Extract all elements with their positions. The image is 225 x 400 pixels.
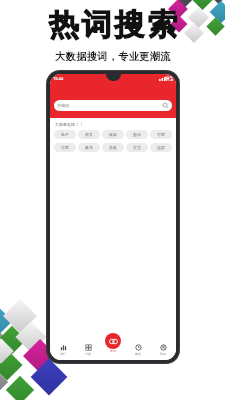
staticText: 美食: [109, 145, 117, 150]
staticText: 大家都在搜！！: [55, 122, 83, 127]
button[interactable]: 我的: [152, 343, 174, 357]
button[interactable]: 关键词: [54, 100, 172, 111]
staticText: 排行: [60, 352, 66, 356]
staticText: 我的: [160, 352, 166, 356]
staticText: 妹妹: [109, 132, 117, 137]
staticText: 热词搜索: [47, 6, 179, 44]
button[interactable]: 可爱: [54, 143, 76, 152]
staticText: 大数据搜词，专业更潮流: [55, 50, 171, 63]
button[interactable]: 温柔: [150, 143, 172, 152]
staticText: 温柔: [157, 145, 165, 150]
button[interactable]: 最近: [127, 343, 149, 357]
button[interactable]: 兔子: [54, 130, 76, 139]
button[interactable]: 文字: [126, 143, 148, 152]
staticText: 最近: [135, 352, 141, 356]
staticText: 豪车: [85, 145, 93, 150]
staticText: 关键词: [57, 103, 69, 108]
button[interactable]: 新年: [126, 130, 148, 139]
button[interactable]: 可爱: [150, 130, 172, 139]
staticText: 兔子: [61, 132, 69, 137]
button[interactable]: 搜索: [105, 333, 121, 349]
button[interactable]: 排行: [52, 343, 74, 357]
staticText: 可爱: [157, 132, 165, 137]
staticText: 搜词: [110, 349, 116, 353]
button[interactable]: 妹妹: [102, 130, 124, 139]
staticText: 分类: [85, 352, 91, 356]
staticText: 文字: [133, 145, 141, 150]
button[interactable]: 美食: [102, 143, 124, 152]
staticText: 帅女: [85, 132, 93, 137]
button[interactable]: 豪车: [78, 143, 100, 152]
staticText: 可爱: [61, 145, 69, 150]
staticText: 新年: [133, 132, 141, 137]
button[interactable]: 帅女: [78, 130, 100, 139]
button[interactable]: 分类: [77, 343, 99, 357]
staticText: 15:44: [53, 76, 64, 81]
